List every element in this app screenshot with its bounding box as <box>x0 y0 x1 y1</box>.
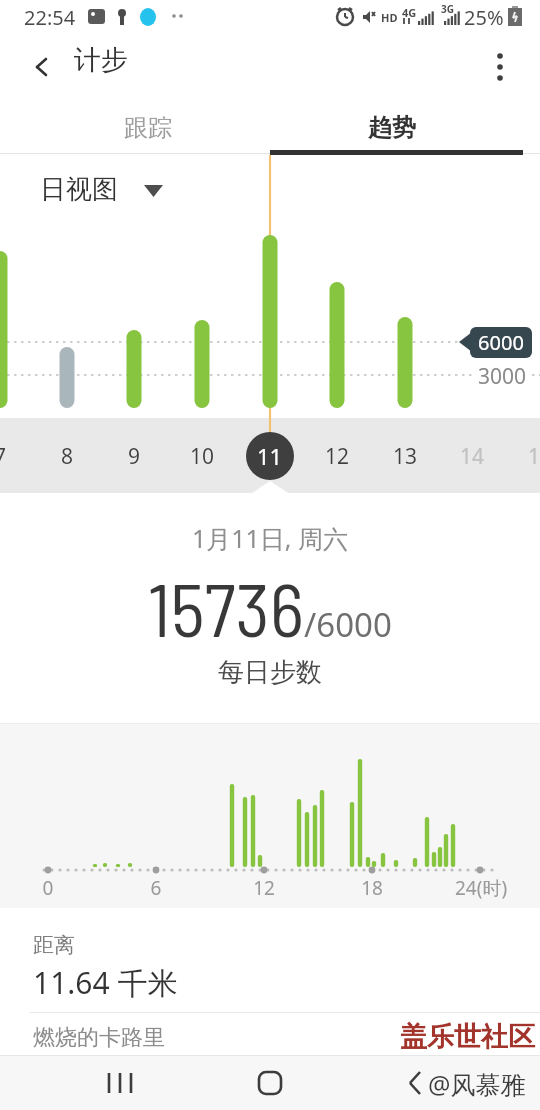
staticText: @风慕雅 <box>428 1067 526 1101</box>
staticText: 距离 <box>33 932 75 958</box>
staticText: 22:54 <box>24 4 76 31</box>
button[interactable]: 日视图 <box>28 165 178 211</box>
staticText: 趋势 <box>368 113 416 143</box>
button[interactable] <box>22 47 62 87</box>
staticText: 6 <box>136 875 176 901</box>
staticText: 25% <box>464 4 504 31</box>
button[interactable]: 跟踪 <box>13 100 283 155</box>
staticText: 日视图 <box>40 173 118 206</box>
button[interactable]: 10 <box>172 442 232 471</box>
staticText: 15 <box>510 442 540 471</box>
staticText: 跟踪 <box>124 113 172 143</box>
button[interactable]: 趋势 <box>257 100 527 155</box>
button[interactable] <box>480 45 520 89</box>
button[interactable]: 8 <box>37 442 97 471</box>
button[interactable] <box>245 1058 295 1108</box>
staticText: 燃烧的卡路里 <box>33 1024 165 1052</box>
staticText: 3000 <box>474 362 530 391</box>
staticText: 0 <box>28 875 68 901</box>
staticText: 1月11日, 周六 <box>0 521 540 555</box>
staticText: 6000 <box>470 329 532 356</box>
staticText: 4G <box>402 5 417 20</box>
staticText: 3G <box>441 2 454 16</box>
staticText: 12 <box>244 875 284 901</box>
button[interactable]: 9 <box>104 442 164 471</box>
staticText: 盖乐世社区 <box>400 1020 535 1054</box>
button[interactable] <box>95 1058 145 1108</box>
staticText: 15736 <box>148 563 304 652</box>
staticText: 每日步数 <box>0 656 540 689</box>
staticText: 计步 <box>74 43 128 77</box>
staticText: HD <box>381 10 398 25</box>
staticText: 11 <box>257 441 283 471</box>
staticText: /6000 <box>304 602 392 647</box>
button[interactable]: 13 <box>375 442 435 471</box>
button[interactable] <box>395 1058 435 1108</box>
staticText: 24(时) <box>455 875 525 901</box>
button[interactable]: 11 <box>246 432 294 480</box>
button[interactable]: 12 <box>307 442 367 471</box>
staticText: 18 <box>352 875 392 901</box>
button[interactable]: 7 <box>0 442 30 471</box>
staticText: 14 <box>442 442 502 471</box>
staticText: 11.64 千米 <box>33 962 178 1003</box>
